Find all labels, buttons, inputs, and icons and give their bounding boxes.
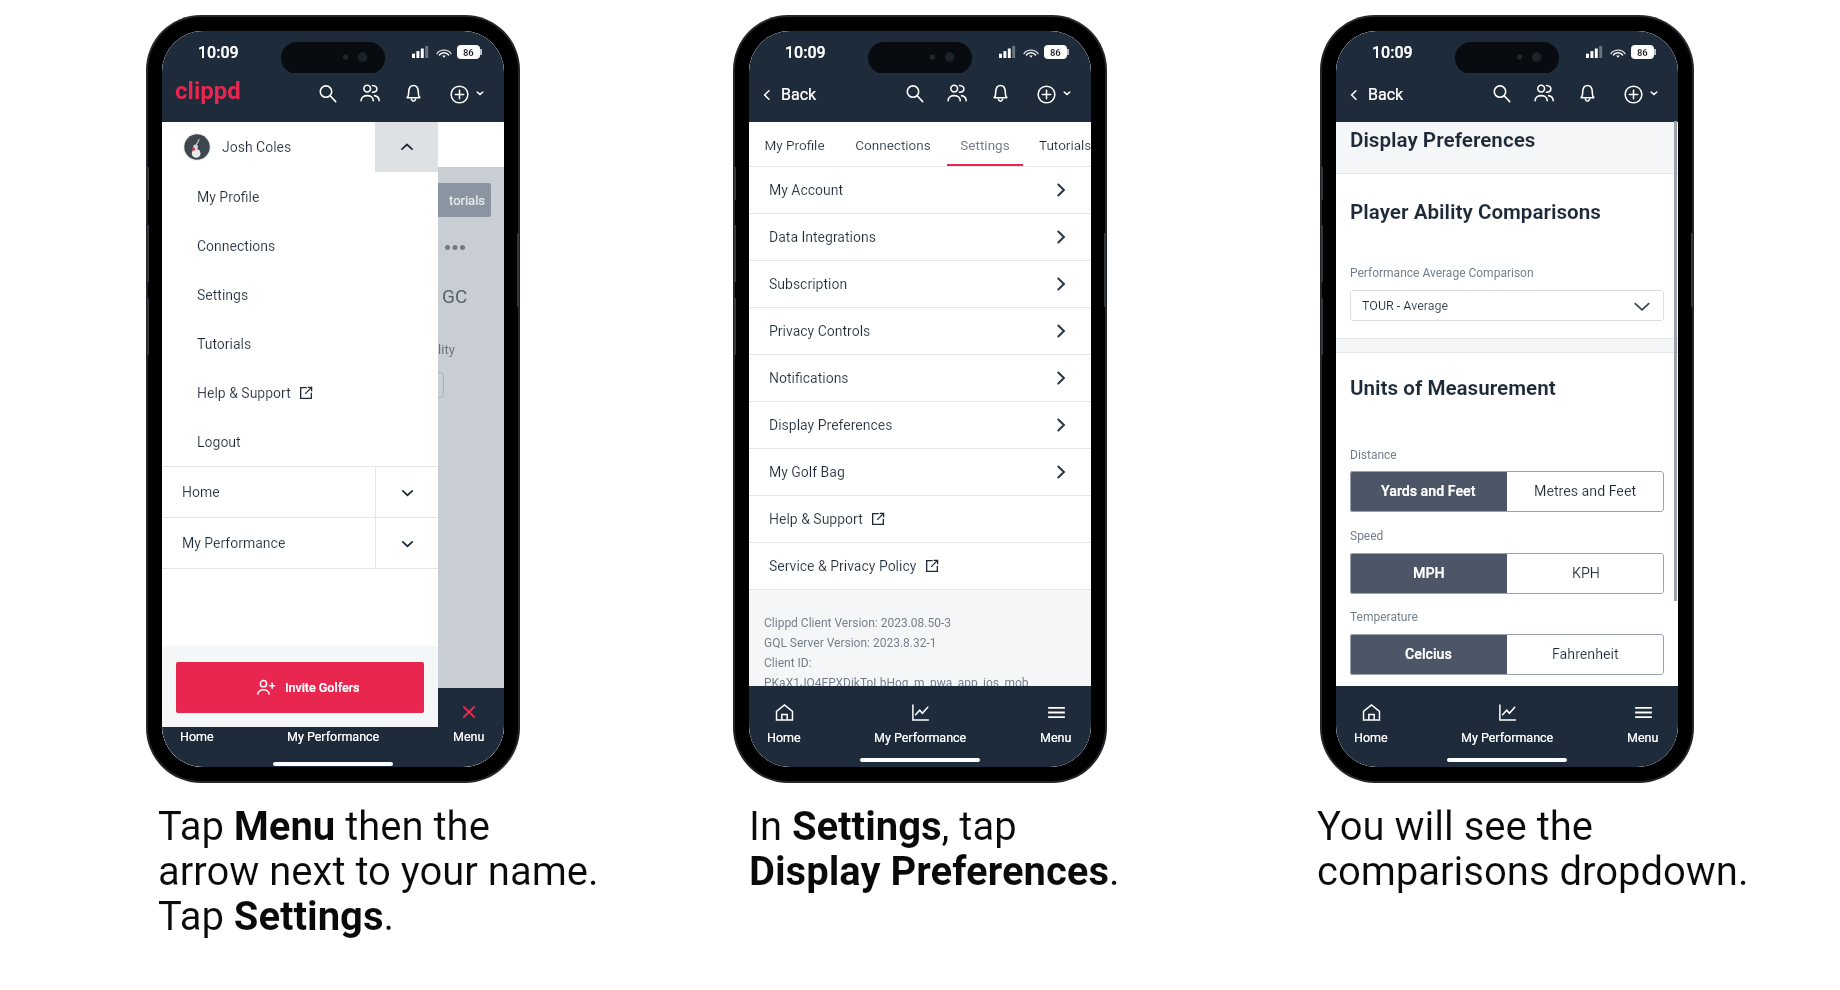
staticText: Yards and Feet: [1381, 483, 1476, 500]
button[interactable]: Clippd home: [175, 77, 241, 105]
button[interactable]: Connections: [844, 122, 942, 167]
button[interactable]: TOUR - Average: [1350, 290, 1664, 321]
staticText: Display Preferences: [769, 417, 893, 433]
button[interactable]: Metres and Feet: [1507, 471, 1664, 512]
button[interactable]: Fahrenheit: [1507, 634, 1664, 675]
staticText: TOUR - Average: [1362, 298, 1449, 313]
staticText: You will see the comparisons dropdown.: [1317, 803, 1749, 894]
staticText: Speed: [1350, 529, 1384, 543]
button[interactable]: My Profile: [761, 122, 827, 167]
button[interactable]: Notifications: [1570, 76, 1605, 111]
staticText: My Profile: [764, 137, 825, 153]
staticText: Fahrenheit: [1552, 646, 1619, 663]
staticText: Metres and Feet: [1534, 483, 1637, 500]
staticText: Settings: [197, 287, 249, 303]
staticText: Josh Coles: [222, 139, 292, 155]
button[interactable]: Help & Support: [162, 368, 438, 417]
button[interactable]: Display Preferences: [749, 402, 1091, 448]
button[interactable]: Connections: [162, 221, 438, 270]
button[interactable]: Home: [162, 688, 232, 750]
staticText: Distance: [1350, 448, 1397, 462]
button[interactable]: Menu: [1021, 686, 1091, 748]
button[interactable]: Menu: [1608, 686, 1678, 748]
button[interactable]: Yards and Feet: [1350, 471, 1507, 512]
button[interactable]: KPH: [1507, 553, 1664, 594]
button[interactable]: Data Integrations: [749, 214, 1091, 260]
staticText: Performance Average Comparison: [1350, 266, 1534, 280]
staticText: MPH: [1413, 565, 1445, 582]
staticText: Notifications: [769, 370, 849, 386]
button[interactable]: My Golf Bag: [749, 449, 1091, 495]
staticText: Tutorials: [197, 336, 252, 352]
staticText: My Profile: [197, 189, 260, 205]
button[interactable]: Add new: [443, 76, 485, 112]
button[interactable]: My Profile: [162, 172, 438, 221]
staticText: Invite Golfers: [285, 680, 360, 695]
button[interactable]: My Performance: [1406, 686, 1608, 748]
staticText: In Settings, tap Display Preferences.: [749, 803, 1120, 894]
button[interactable]: Close menu: [434, 688, 504, 750]
staticText: Display Preferences: [1350, 128, 1536, 152]
staticText: Tutorials: [1039, 137, 1091, 153]
button[interactable]: MPH: [1350, 553, 1507, 594]
button[interactable]: Notifications: [983, 76, 1018, 111]
staticText: KPH: [1572, 565, 1600, 582]
button[interactable]: Settings: [952, 122, 1018, 167]
staticText: My Performance: [182, 535, 286, 551]
button[interactable]: Connections: [352, 76, 387, 111]
button[interactable]: Service & Privacy Policy: [749, 543, 1091, 589]
button[interactable]: Add new: [1617, 76, 1659, 112]
button[interactable]: Help & Support: [749, 496, 1091, 542]
button[interactable]: Invite Golfers: [176, 662, 424, 713]
staticText: clippd: [175, 77, 241, 105]
staticText: 86: [463, 47, 474, 58]
staticText: Help & Support: [197, 385, 291, 401]
button[interactable]: Tutorials: [162, 319, 438, 368]
staticText: torials: [449, 193, 486, 208]
button[interactable]: Search: [1484, 76, 1519, 111]
staticText: Connections: [855, 137, 931, 153]
button[interactable]: Search: [897, 76, 932, 111]
button[interactable]: Logout: [162, 417, 438, 466]
staticText: Back: [781, 85, 817, 104]
button[interactable]: Privacy Controls: [749, 308, 1091, 354]
staticText: Player Ability Comparisons: [1350, 200, 1601, 224]
staticText: 10:09: [198, 43, 239, 62]
button[interactable]: Search: [310, 76, 345, 111]
staticText: Service & Privacy Policy: [769, 558, 917, 574]
button[interactable]: Back: [756, 75, 820, 113]
button[interactable]: Celcius: [1350, 634, 1507, 675]
button[interactable]: My Performance: [232, 688, 434, 750]
button[interactable]: Connections: [1526, 76, 1561, 111]
staticText: Clippd Client Version: 2023.08.50-3 GQL …: [764, 616, 1029, 689]
staticText: Back: [1368, 85, 1404, 104]
button[interactable]: Connections: [939, 76, 974, 111]
button[interactable]: Home: [162, 467, 438, 517]
button[interactable]: Add new: [1030, 76, 1072, 112]
staticText: Home: [180, 729, 214, 744]
staticText: Units of Measurement: [1350, 376, 1556, 400]
button[interactable]: My Account: [749, 167, 1091, 213]
button[interactable]: Home: [749, 686, 819, 748]
staticText: 10:09: [785, 43, 826, 62]
button[interactable]: Josh Coles: [162, 121, 438, 172]
button[interactable]: Home: [1336, 686, 1406, 748]
staticText: GC: [442, 285, 468, 307]
staticText: My Account: [769, 182, 844, 198]
button[interactable]: My Performance: [162, 518, 438, 568]
button[interactable]: Settings: [162, 270, 438, 319]
staticText: My Performance: [874, 730, 967, 745]
staticText: Logout: [197, 434, 241, 450]
staticText: 86: [1050, 47, 1061, 58]
button[interactable]: Subscription: [749, 261, 1091, 307]
button[interactable]: Collapse profile: [375, 121, 438, 172]
staticText: 10:09: [1372, 43, 1413, 62]
staticText: Home: [767, 730, 801, 745]
button[interactable]: Back: [1343, 75, 1407, 113]
staticText: My Performance: [287, 729, 380, 744]
button[interactable]: Tutorials: [1039, 122, 1091, 167]
button[interactable]: Notifications: [749, 355, 1091, 401]
staticText: Privacy Controls: [769, 323, 871, 339]
button[interactable]: My Performance: [819, 686, 1021, 748]
button[interactable]: Notifications: [396, 76, 431, 111]
